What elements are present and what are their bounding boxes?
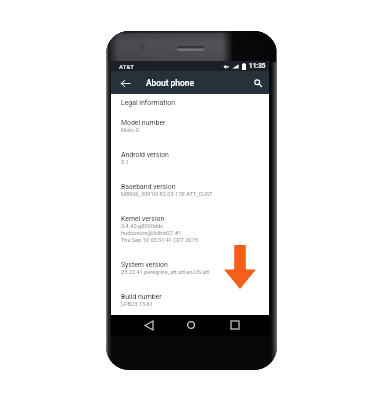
staticText: Model number [121,119,166,127]
button[interactable]: Recents [227,317,243,333]
staticText: About phone [146,78,194,88]
staticText: AT&T [119,63,135,70]
staticText: Legal information [121,99,175,107]
staticText: Baseband version [121,183,176,191]
staticText: Build number [121,293,162,301]
button[interactable]: Back [141,317,157,333]
staticText: 5.1 [121,159,129,166]
staticText: hudsoncm@ilclbld27 #1 [121,230,182,237]
button[interactable]: Model number [111,110,269,142]
staticText: 11:35 [249,62,266,70]
button[interactable]: Kernel version [111,206,269,252]
staticText: Thu Sep 10 03:31:41 CDT 2015 [121,237,198,244]
button[interactable]: Search [250,75,266,91]
button[interactable]: Back [117,75,133,91]
button[interactable]: Build number [111,284,269,315]
button[interactable]: Home [183,317,199,333]
staticText: 23.22.41.peregrine_att.att.en.US.att [121,269,210,276]
button[interactable]: Baseband version [111,174,269,206]
staticText: Moto G [121,127,140,134]
staticText: M8926_30910I 82.03 17R ATT_CUST [121,191,213,198]
staticText: Android version [121,151,169,159]
staticText: Kernel version [121,215,165,223]
button[interactable]: Legal information [111,94,269,110]
button[interactable]: Android version [111,142,269,174]
staticText: System version [121,261,168,269]
staticText: 3.4.42-g8000dds [121,223,163,230]
button[interactable]: System version [111,252,269,284]
staticText: LPB23.13-61 [121,301,153,307]
